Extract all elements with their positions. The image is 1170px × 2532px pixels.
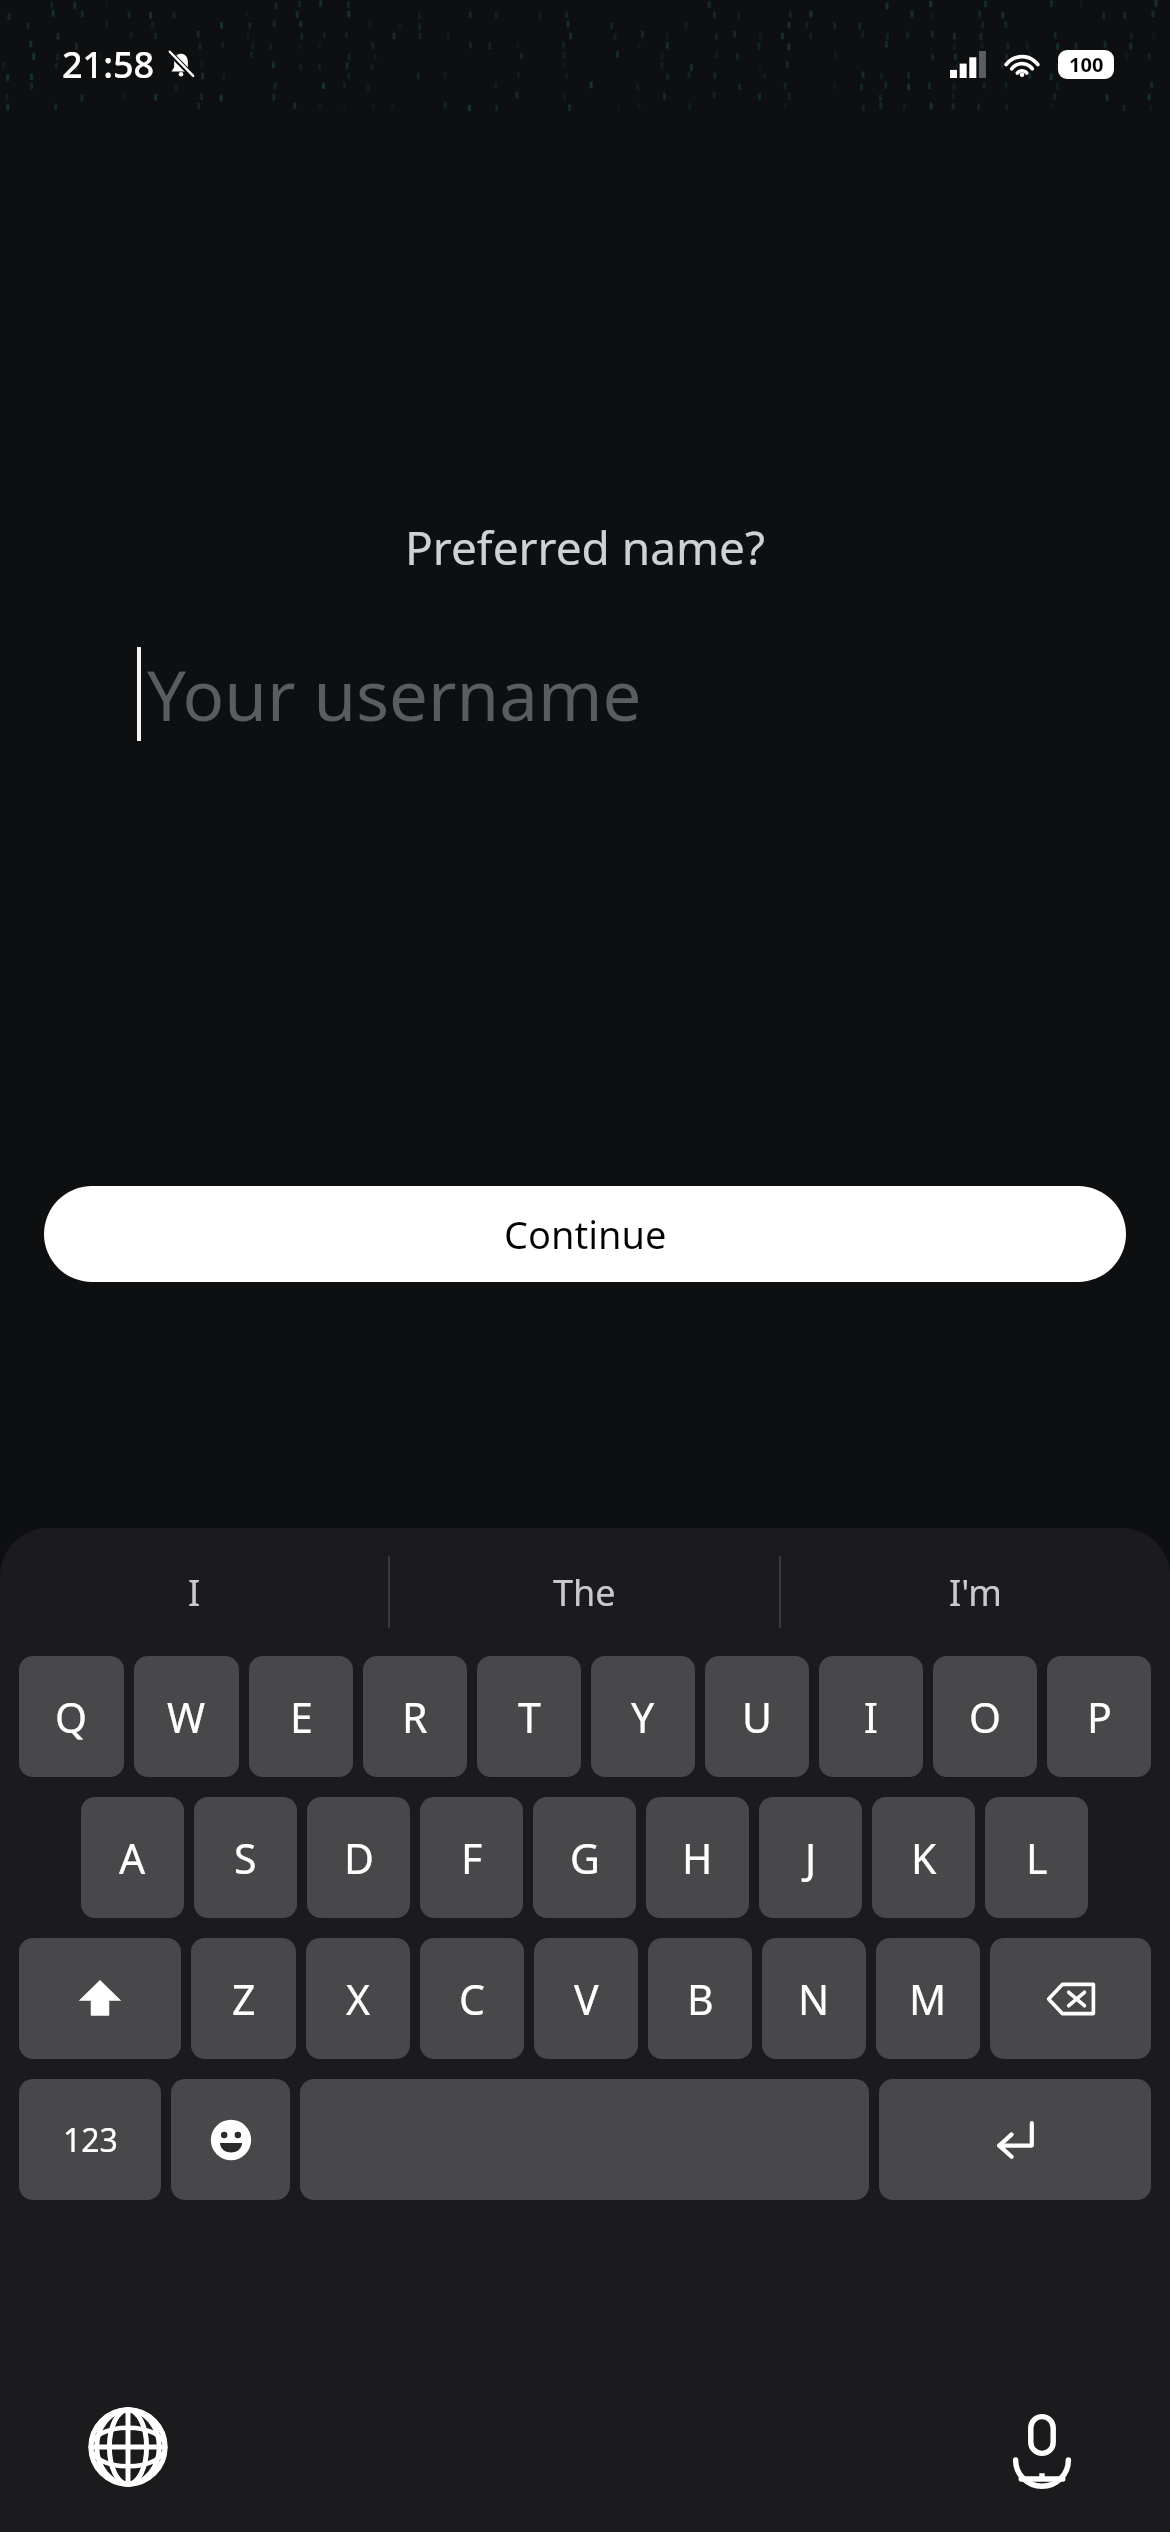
button[interactable]: Enter — [879, 2079, 1151, 2200]
button[interactable]: T — [477, 1656, 581, 1777]
staticText: Z — [232, 1971, 256, 2027]
button[interactable]: R — [363, 1656, 467, 1777]
button[interactable]: G — [533, 1797, 636, 1918]
button[interactable]: W — [134, 1656, 239, 1777]
staticText: 21:58 — [62, 40, 155, 89]
button[interactable]: P — [1047, 1656, 1151, 1777]
button[interactable]: Continue — [44, 1186, 1126, 1282]
staticText: 123 — [63, 2118, 118, 2162]
staticText: Your username — [147, 647, 642, 741]
button[interactable]: U — [705, 1656, 809, 1777]
button[interactable]: Z — [191, 1938, 296, 2059]
button[interactable]: Q — [19, 1656, 124, 1777]
button[interactable]: Shift — [19, 1938, 181, 2059]
staticText: The — [553, 1568, 616, 1617]
staticText: O — [969, 1689, 1002, 1745]
staticText: I — [864, 1689, 878, 1745]
button[interactable]: V — [534, 1938, 638, 2059]
staticText: S — [234, 1830, 257, 1886]
button[interactable]: B — [648, 1938, 752, 2059]
button[interactable]: K — [872, 1797, 975, 1918]
staticText: R — [402, 1689, 428, 1745]
button[interactable]: X — [306, 1938, 410, 2059]
staticText: K — [911, 1830, 937, 1886]
staticText: Y — [631, 1689, 655, 1745]
button[interactable]: I'm — [781, 1528, 1170, 1656]
button[interactable]: F — [420, 1797, 523, 1918]
button[interactable]: I — [0, 1528, 388, 1656]
staticText: D — [344, 1830, 374, 1886]
staticText: C — [459, 1971, 485, 2027]
staticText: U — [742, 1689, 772, 1745]
button[interactable]: Voice input — [1002, 2407, 1082, 2487]
button[interactable]: A — [81, 1797, 184, 1918]
button[interactable]: D — [307, 1797, 410, 1918]
button[interactable]: Y — [591, 1656, 695, 1777]
button[interactable]: S — [194, 1797, 297, 1918]
button[interactable]: Your username — [0, 639, 1170, 749]
staticText: X — [346, 1971, 371, 2027]
staticText: I'm — [949, 1568, 1002, 1617]
button[interactable]: H — [646, 1797, 749, 1918]
button[interactable]: E — [249, 1656, 353, 1777]
staticText: Q — [55, 1689, 88, 1745]
staticText: L — [1026, 1830, 1048, 1886]
button[interactable]: I — [819, 1656, 923, 1777]
staticText: N — [798, 1971, 830, 2027]
staticText: I — [188, 1568, 201, 1617]
staticText: G — [570, 1830, 600, 1886]
button[interactable]: J — [759, 1797, 862, 1918]
staticText: T — [518, 1689, 541, 1745]
button[interactable]: C — [420, 1938, 524, 2059]
button[interactable]: The — [390, 1528, 779, 1656]
staticText: H — [682, 1830, 713, 1886]
staticText: M — [909, 1971, 947, 2027]
button[interactable]: Switch keyboard language — [88, 2407, 168, 2487]
button[interactable]: L — [985, 1797, 1088, 1918]
staticText: J — [805, 1830, 817, 1886]
staticText: V — [574, 1971, 599, 2027]
staticText: A — [119, 1830, 146, 1886]
staticText: W — [167, 1689, 206, 1745]
staticText: Continue — [504, 1208, 667, 1260]
staticText: Preferred name? — [0, 516, 1170, 579]
button[interactable]: O — [933, 1656, 1037, 1777]
staticText: P — [1087, 1689, 1112, 1745]
button[interactable]: 123 — [19, 2079, 161, 2200]
staticText: 100 — [1069, 51, 1104, 78]
staticText: B — [687, 1971, 714, 2027]
staticText: F — [461, 1830, 483, 1886]
button[interactable]: N — [762, 1938, 866, 2059]
button[interactable]: Backspace — [990, 1938, 1151, 2059]
button[interactable]: Emoji — [171, 2079, 290, 2200]
button[interactable]: M — [876, 1938, 980, 2059]
staticText: E — [290, 1689, 313, 1745]
